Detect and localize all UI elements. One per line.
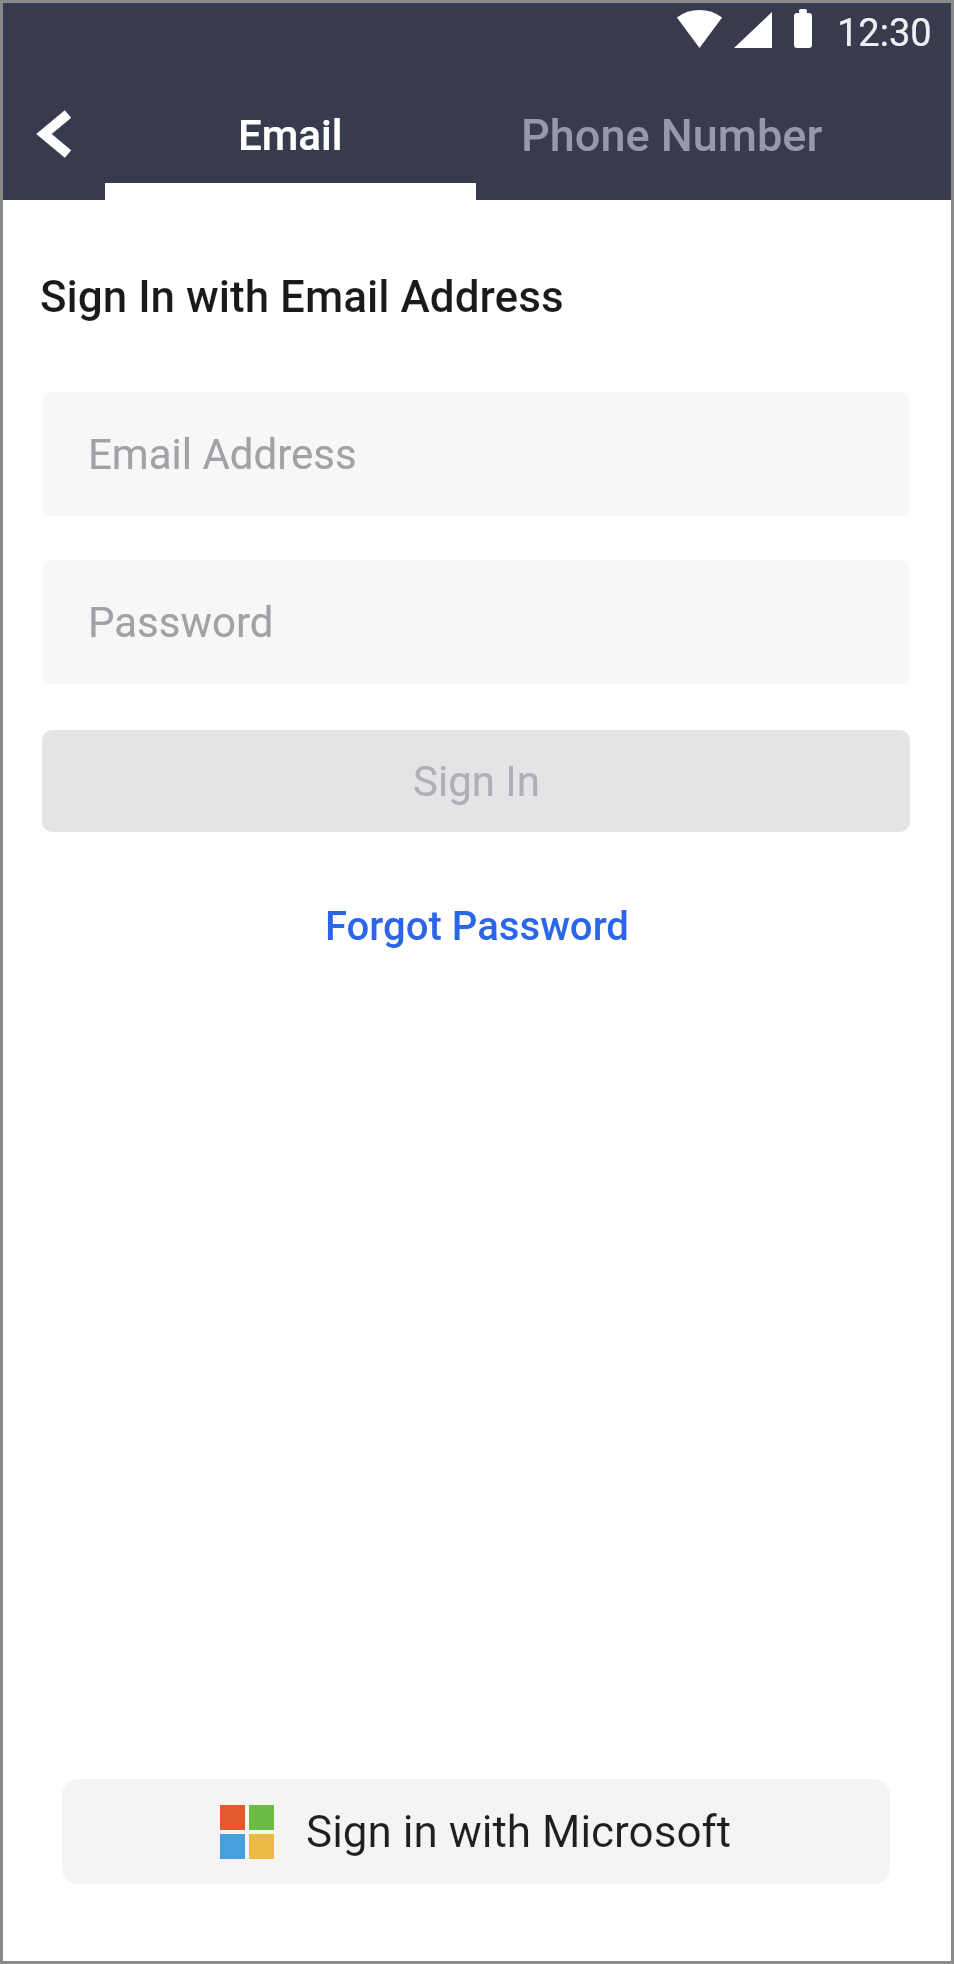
button[interactable]: Sign In — [42, 730, 910, 832]
button[interactable] — [18, 94, 92, 174]
staticText: Phone Number — [521, 109, 823, 162]
staticText: Email Address — [88, 430, 357, 479]
button[interactable]: Password — [42, 560, 910, 684]
button[interactable]: Phone Number — [476, 86, 868, 184]
staticText: Forgot Password — [325, 903, 629, 950]
staticText: Sign In with Email Address — [40, 271, 564, 323]
button[interactable]: Sign in with Microsoft — [62, 1779, 890, 1884]
staticText: Sign In — [413, 757, 540, 806]
button[interactable]: Email Address — [42, 392, 910, 516]
button[interactable]: Email — [105, 86, 476, 184]
staticText: Sign in with Microsoft — [306, 1806, 732, 1858]
staticText: 12:30 — [837, 11, 932, 56]
staticText: Email — [238, 111, 343, 160]
button[interactable]: Forgot Password — [227, 888, 727, 964]
staticText: Password — [88, 598, 274, 647]
